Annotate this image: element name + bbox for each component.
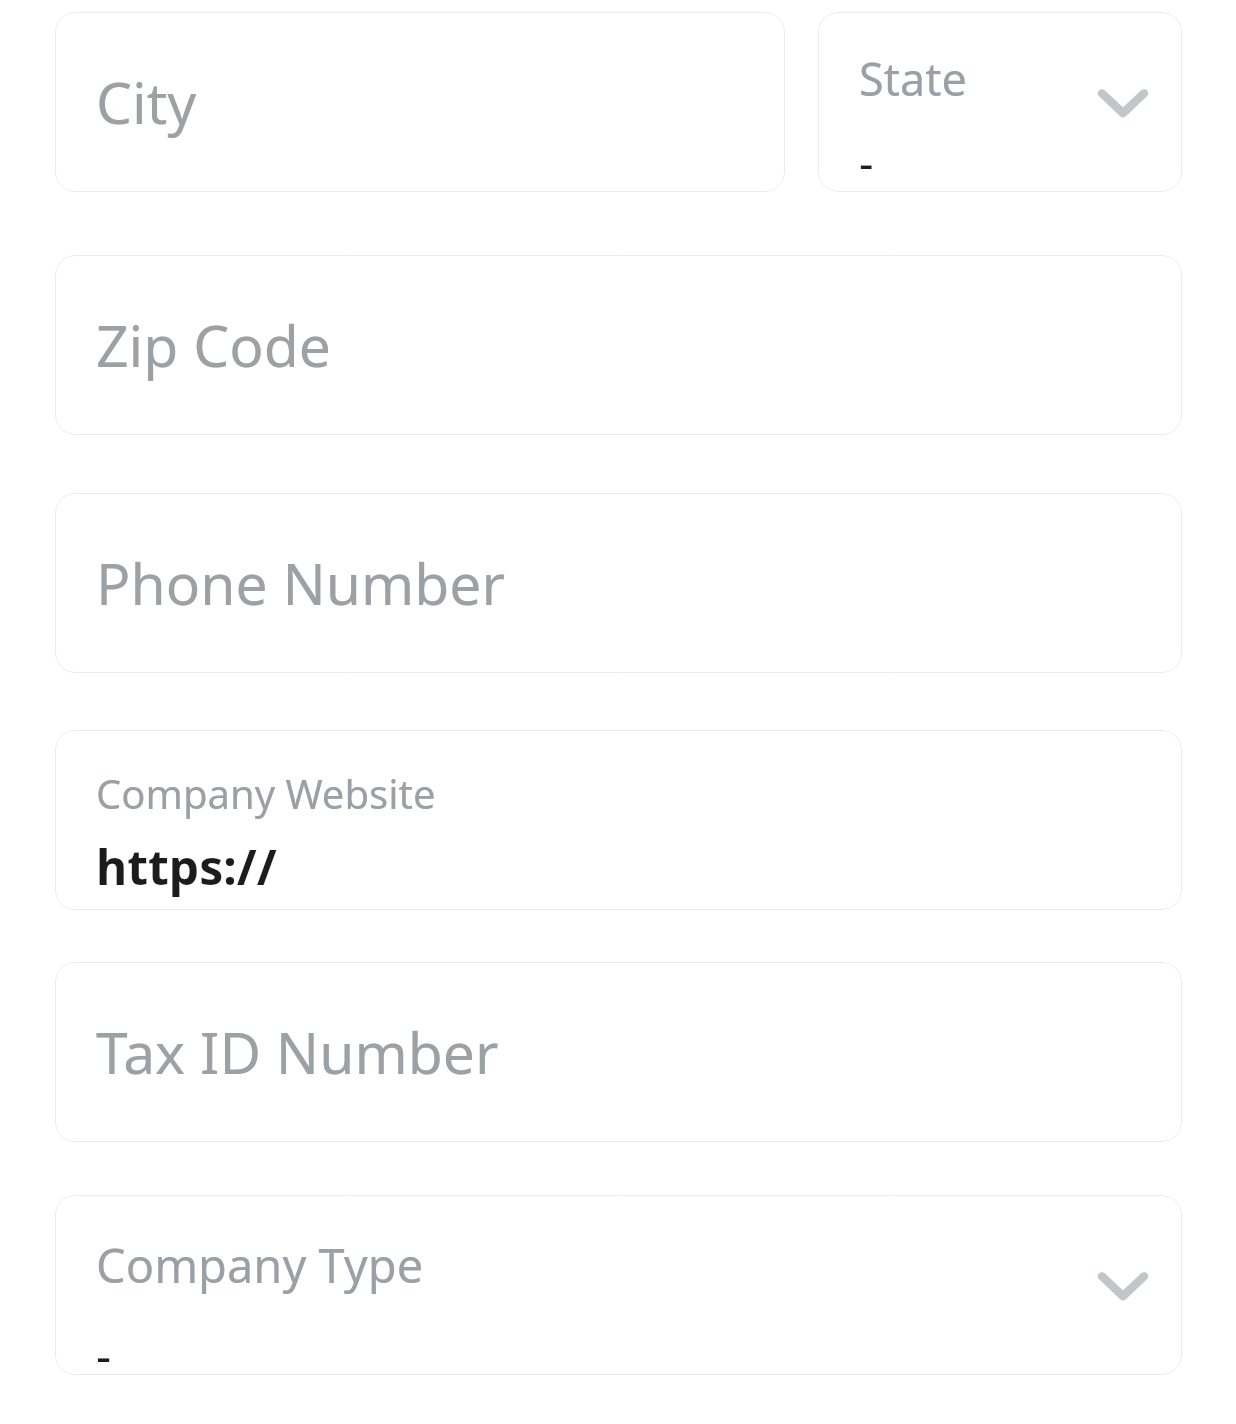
staticText: - — [96, 1323, 112, 1375]
staticText: https:// — [96, 834, 277, 899]
other: Select company type — [1092, 1254, 1154, 1316]
staticText: Company Type — [96, 1233, 424, 1297]
staticText: Phone Number — [96, 544, 505, 622]
other: Select state — [1092, 71, 1154, 133]
staticText: City — [96, 63, 197, 141]
staticText: Zip Code — [96, 306, 331, 384]
staticText: Company Website — [96, 766, 436, 820]
button[interactable]: City — [55, 12, 785, 192]
staticText: Tax ID Number — [96, 1013, 499, 1091]
button[interactable]: Phone Number — [55, 493, 1182, 673]
staticText: State — [859, 48, 967, 109]
button[interactable]: Company Website — [55, 730, 1182, 910]
staticText: - — [859, 131, 874, 192]
button[interactable]: State — [818, 12, 1182, 192]
button[interactable]: Zip Code — [55, 255, 1182, 435]
button[interactable]: Tax ID Number — [55, 962, 1182, 1142]
button[interactable]: Company Type — [55, 1195, 1182, 1375]
